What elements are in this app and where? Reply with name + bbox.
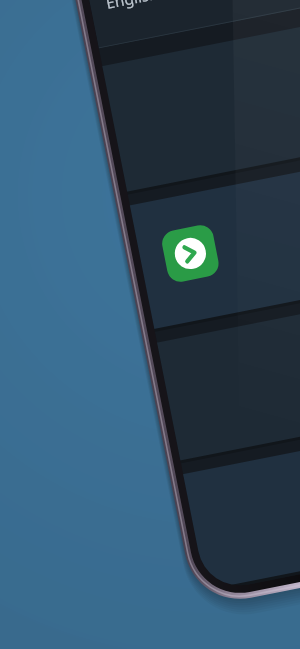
button[interactable]: Translate app on iPhone (0, 0, 300, 649)
